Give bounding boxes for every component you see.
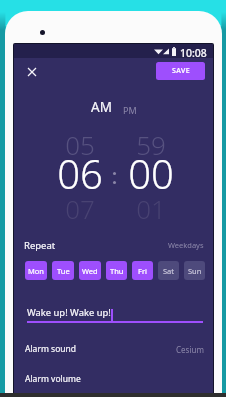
staticText: Wed (82, 266, 98, 276)
button[interactable]: Close (22, 62, 42, 82)
staticText: 10:08 (180, 46, 207, 60)
button[interactable]: Wed (79, 261, 101, 280)
button[interactable]: Weekdays (168, 240, 204, 250)
staticText: Repeat (24, 239, 56, 252)
button[interactable]: Sun (184, 261, 205, 280)
staticText: 05 (46, 127, 114, 162)
button[interactable]: Alarm sound (14, 336, 213, 362)
button[interactable]: PM (123, 104, 137, 116)
staticText: 07 (46, 191, 114, 226)
staticText: Mon (28, 266, 44, 276)
button[interactable]: Fri (132, 261, 153, 280)
staticText: Thu (110, 266, 124, 276)
staticText: Sun (188, 266, 202, 276)
staticText: Fri (138, 266, 147, 276)
button[interactable]: Sat (158, 261, 179, 280)
staticText: Alarm volume (25, 373, 81, 385)
button[interactable]: Mon (25, 261, 47, 280)
staticText: Alarm sound (25, 343, 77, 355)
staticText: Tue (57, 266, 70, 276)
staticText: 00 (117, 146, 185, 200)
staticText: 06 (46, 146, 114, 200)
button[interactable]: 05 (46, 114, 114, 214)
button[interactable]: AM (91, 98, 112, 116)
staticText: 59 (117, 127, 185, 162)
button[interactable]: 59 (117, 114, 185, 214)
staticText: Wake up! Wake up! (27, 306, 111, 319)
button[interactable]: Tue (52, 261, 74, 280)
button[interactable]: Thu (106, 261, 127, 280)
staticText: 01 (117, 191, 185, 226)
button[interactable]: Alarm volume (14, 366, 213, 392)
button[interactable]: Wake up! Wake up! (27, 306, 111, 319)
button[interactable]: SAVE (156, 62, 205, 80)
staticText: Sat (163, 266, 175, 276)
staticText: SAVE (172, 66, 190, 76)
staticText: Cesium (176, 344, 204, 355)
